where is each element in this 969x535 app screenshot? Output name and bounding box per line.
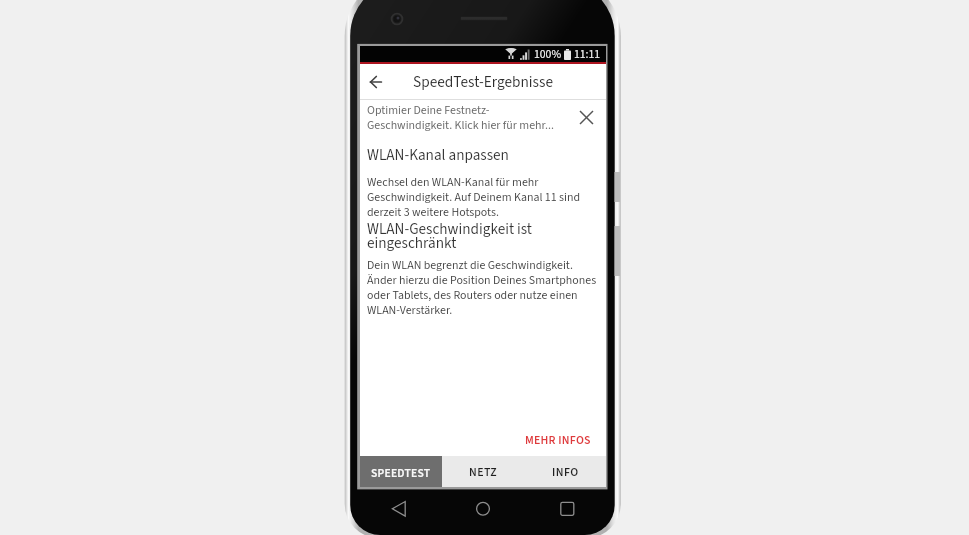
button[interactable]: SPEEDTEST [360,456,442,487]
button[interactable]: INFO [524,456,606,487]
button[interactable]: Schließen [568,100,604,135]
staticText: MEHR INFOS [525,432,591,449]
staticText: WLAN-Geschwindigkeit ist eingeschränkt [367,218,601,255]
staticText: SPEEDTEST [371,465,431,481]
button[interactable]: Zurück [362,68,390,96]
button[interactable]: NETZ [442,456,524,487]
button[interactable]: Zuletzt verwendet [552,494,582,524]
button[interactable]: Startseite [468,494,498,524]
staticText: Wechsel den WLAN-Kanal für mehr Geschwin… [367,175,601,220]
staticText: INFO [552,464,579,481]
staticText: 100% [534,46,562,62]
button[interactable]: MEHR INFOS [507,428,591,452]
staticText: 11:11 [574,46,601,62]
staticText: SpeedTest-Ergebnisse [413,71,554,93]
staticText: Optimier Deine Festnetz-Geschwindigkeit.… [367,104,563,134]
button[interactable]: Zurück [377,494,409,524]
staticText: Dein WLAN begrenzt die Geschwindigkeit. … [367,258,601,318]
staticText: WLAN-Kanal anpassen [367,144,509,166]
staticText: NETZ [469,464,497,481]
button[interactable]: Optimier Deine Festnetz-Geschwindigkeit.… [360,101,606,136]
